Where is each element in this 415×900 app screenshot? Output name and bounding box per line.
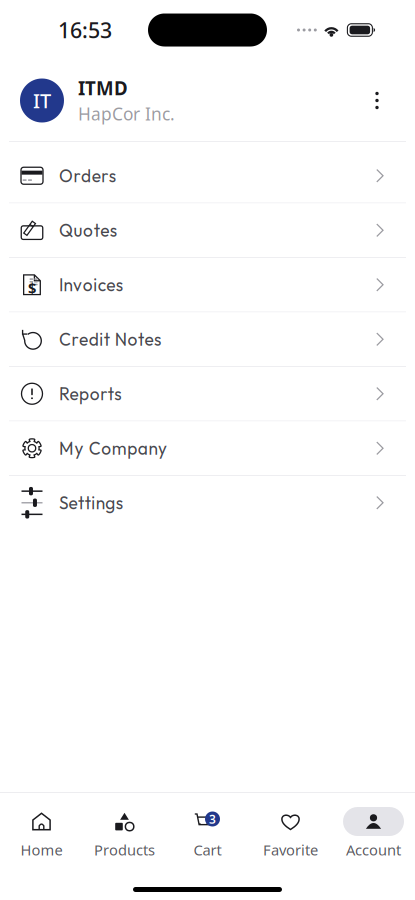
button[interactable]: Credit Notes bbox=[0, 312, 415, 367]
staticText: HapCor Inc. bbox=[78, 102, 175, 125]
staticText: Reports bbox=[59, 383, 121, 405]
staticText: Cart bbox=[193, 840, 221, 859]
button[interactable]: Quotes bbox=[0, 203, 415, 258]
staticText: Settings bbox=[59, 492, 123, 514]
button[interactable]: Favorite bbox=[249, 807, 332, 859]
button[interactable]: 3 bbox=[166, 807, 249, 859]
staticText: Credit Notes bbox=[59, 328, 161, 350]
button[interactable]: Products bbox=[83, 807, 166, 859]
staticText: Invoices bbox=[59, 274, 123, 296]
staticText: 16:53 bbox=[58, 16, 112, 44]
staticText: IT bbox=[33, 87, 51, 114]
button[interactable]: Home bbox=[0, 807, 83, 859]
staticText: Favorite bbox=[263, 840, 318, 859]
button[interactable]: Reports bbox=[0, 367, 415, 421]
staticText: Account bbox=[346, 840, 401, 859]
staticText: ITMD bbox=[78, 76, 128, 100]
button[interactable]: Account bbox=[332, 807, 415, 859]
button[interactable]: Orders bbox=[0, 149, 415, 203]
staticText: Products bbox=[94, 840, 155, 859]
button[interactable]: Settings bbox=[0, 476, 415, 530]
staticText: Quotes bbox=[59, 219, 117, 241]
button[interactable]: My Company bbox=[0, 421, 415, 476]
staticText: Orders bbox=[59, 165, 116, 187]
staticText: $ bbox=[28, 278, 36, 297]
button[interactable]: $ bbox=[0, 258, 415, 312]
staticText: Home bbox=[20, 840, 62, 859]
staticText: 3 bbox=[209, 811, 216, 827]
staticText: My Company bbox=[59, 437, 167, 459]
button[interactable]: More options bbox=[355, 78, 399, 122]
